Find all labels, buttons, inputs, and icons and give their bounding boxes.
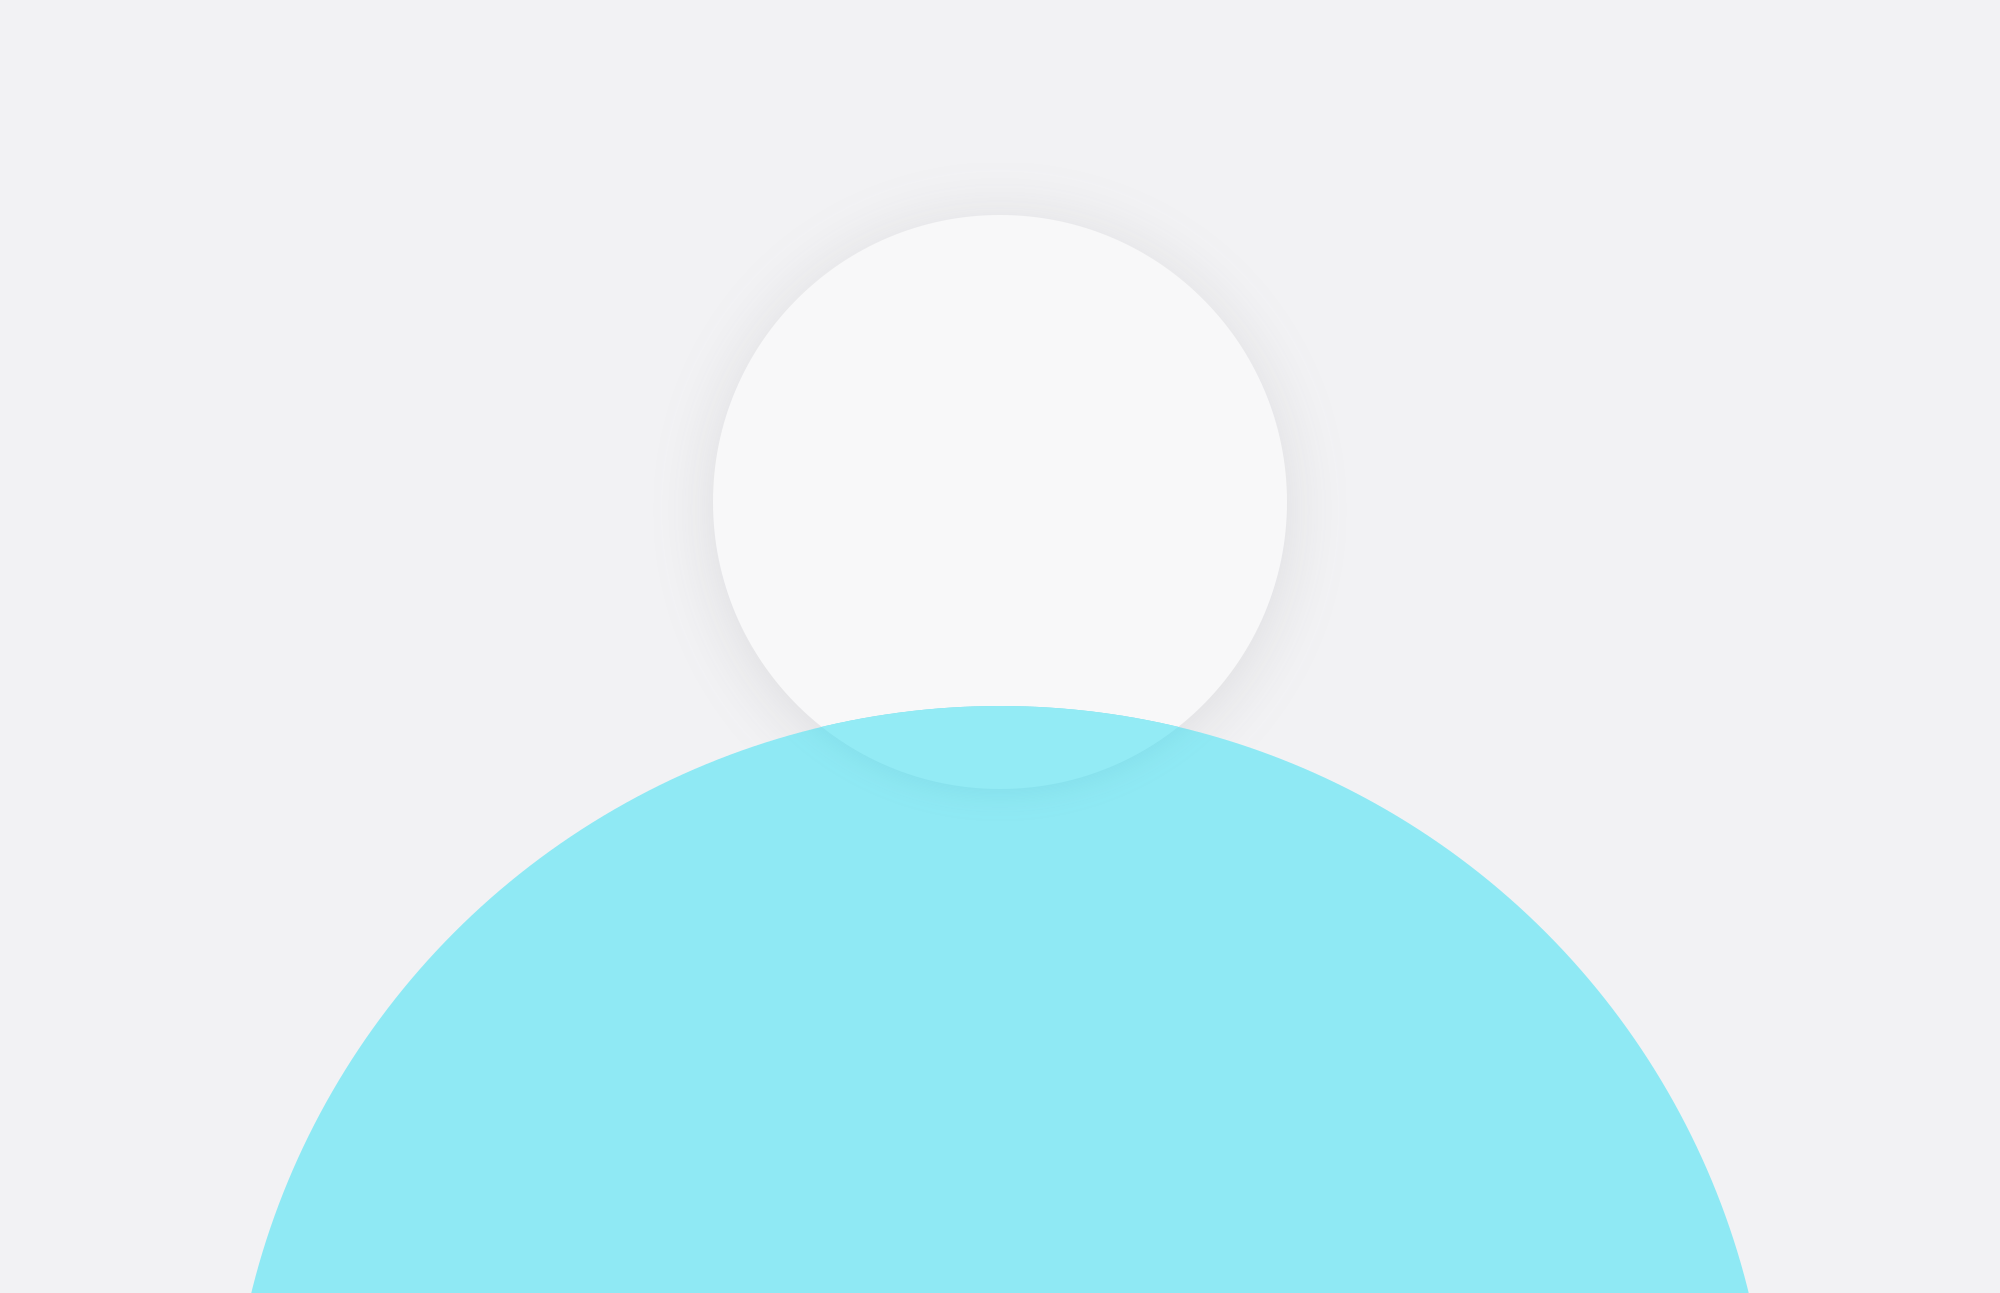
button[interactable]: Profile photo	[0, 0, 2000, 1293]
